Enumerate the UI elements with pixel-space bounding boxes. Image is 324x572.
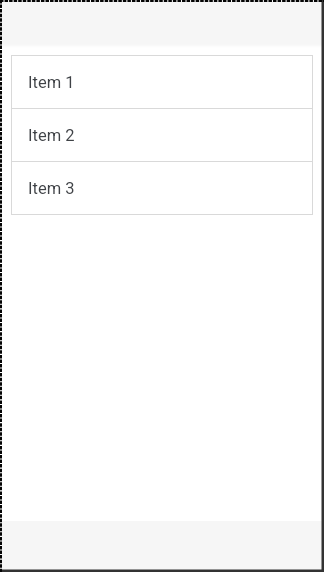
staticText: Item 3 bbox=[28, 179, 75, 198]
staticText: Item 2 bbox=[28, 126, 75, 145]
button[interactable]: Item 2 bbox=[11, 109, 313, 162]
button[interactable]: Item 1 bbox=[11, 56, 313, 109]
button[interactable]: Item 3 bbox=[11, 162, 313, 215]
staticText: Item 1 bbox=[28, 73, 75, 92]
